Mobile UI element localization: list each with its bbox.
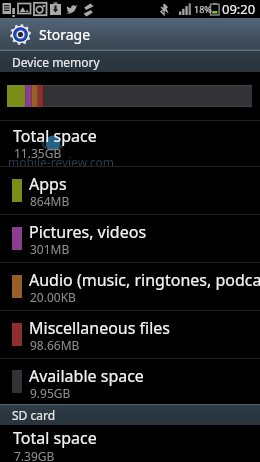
staticText: Pictures, videos bbox=[29, 221, 147, 243]
staticText: SD card bbox=[12, 407, 56, 423]
staticText: Audio (music, ringtones, podcasts) bbox=[29, 269, 260, 291]
button[interactable]: Settings bbox=[0, 18, 260, 51]
staticText: 20.00KB bbox=[30, 289, 76, 305]
button[interactable]: Miscellaneous files bbox=[0, 311, 260, 358]
staticText: 7.39GB bbox=[14, 448, 55, 462]
staticText: 864MB bbox=[30, 193, 70, 209]
staticText: Apps bbox=[29, 173, 67, 195]
staticText: Storage bbox=[39, 25, 91, 44]
staticText: Device memory bbox=[12, 54, 100, 70]
staticText: 98.66MB bbox=[30, 337, 80, 353]
staticText: Total space bbox=[13, 125, 97, 147]
other: Settings bbox=[10, 24, 31, 45]
staticText: mobile-review.com bbox=[8, 154, 115, 170]
staticText: Miscellaneous files bbox=[29, 317, 170, 339]
staticText: 9.95GB bbox=[30, 385, 71, 401]
button[interactable]: Pictures, videos bbox=[0, 215, 260, 262]
staticText: 11.35GB bbox=[14, 145, 62, 161]
button[interactable]: Total space bbox=[0, 425, 260, 462]
staticText: Available space bbox=[29, 365, 144, 387]
button[interactable]: Total space bbox=[0, 121, 260, 166]
staticText: 18% bbox=[194, 3, 212, 15]
button[interactable]: Apps bbox=[0, 167, 260, 214]
button[interactable]: Audio (music, ringtones, podcasts) bbox=[0, 263, 260, 310]
button[interactable]: Available space bbox=[0, 359, 260, 404]
staticText: 301MB bbox=[30, 241, 70, 257]
staticText: Total space bbox=[13, 427, 97, 449]
staticText: 09:20 bbox=[222, 0, 256, 18]
